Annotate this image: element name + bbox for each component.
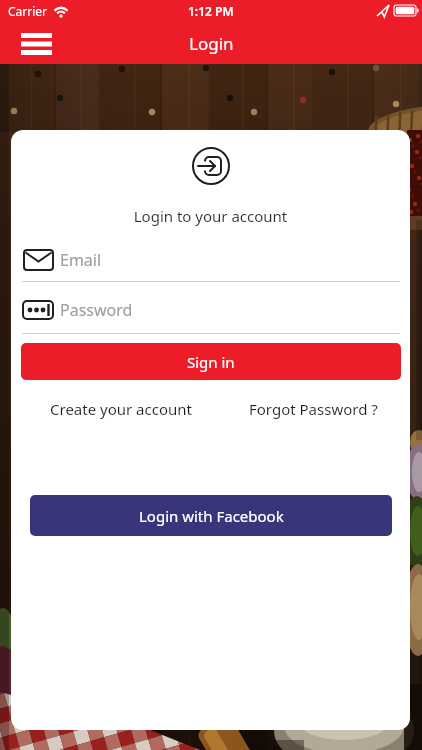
staticText: 1:12 PM [188,3,234,19]
staticText: Forgot Password ? [249,399,378,419]
staticText: Sign in [187,352,235,372]
button[interactable]: Email [60,249,260,271]
button[interactable]: Login with Facebook [30,495,392,536]
button[interactable]: Sign in [21,343,401,380]
button[interactable]: Password [60,299,260,321]
staticText: Password [60,299,133,321]
staticText: Create your account [50,399,192,419]
staticText: Carrier [8,3,48,19]
button[interactable]: Forgot Password ? [249,398,378,420]
button[interactable] [14,27,58,61]
staticText: Login [189,32,234,55]
button[interactable]: Create your account [50,398,192,420]
staticText: Email [60,249,102,271]
staticText: Login to your account [11,206,410,226]
staticText: Login with Facebook [139,506,284,526]
